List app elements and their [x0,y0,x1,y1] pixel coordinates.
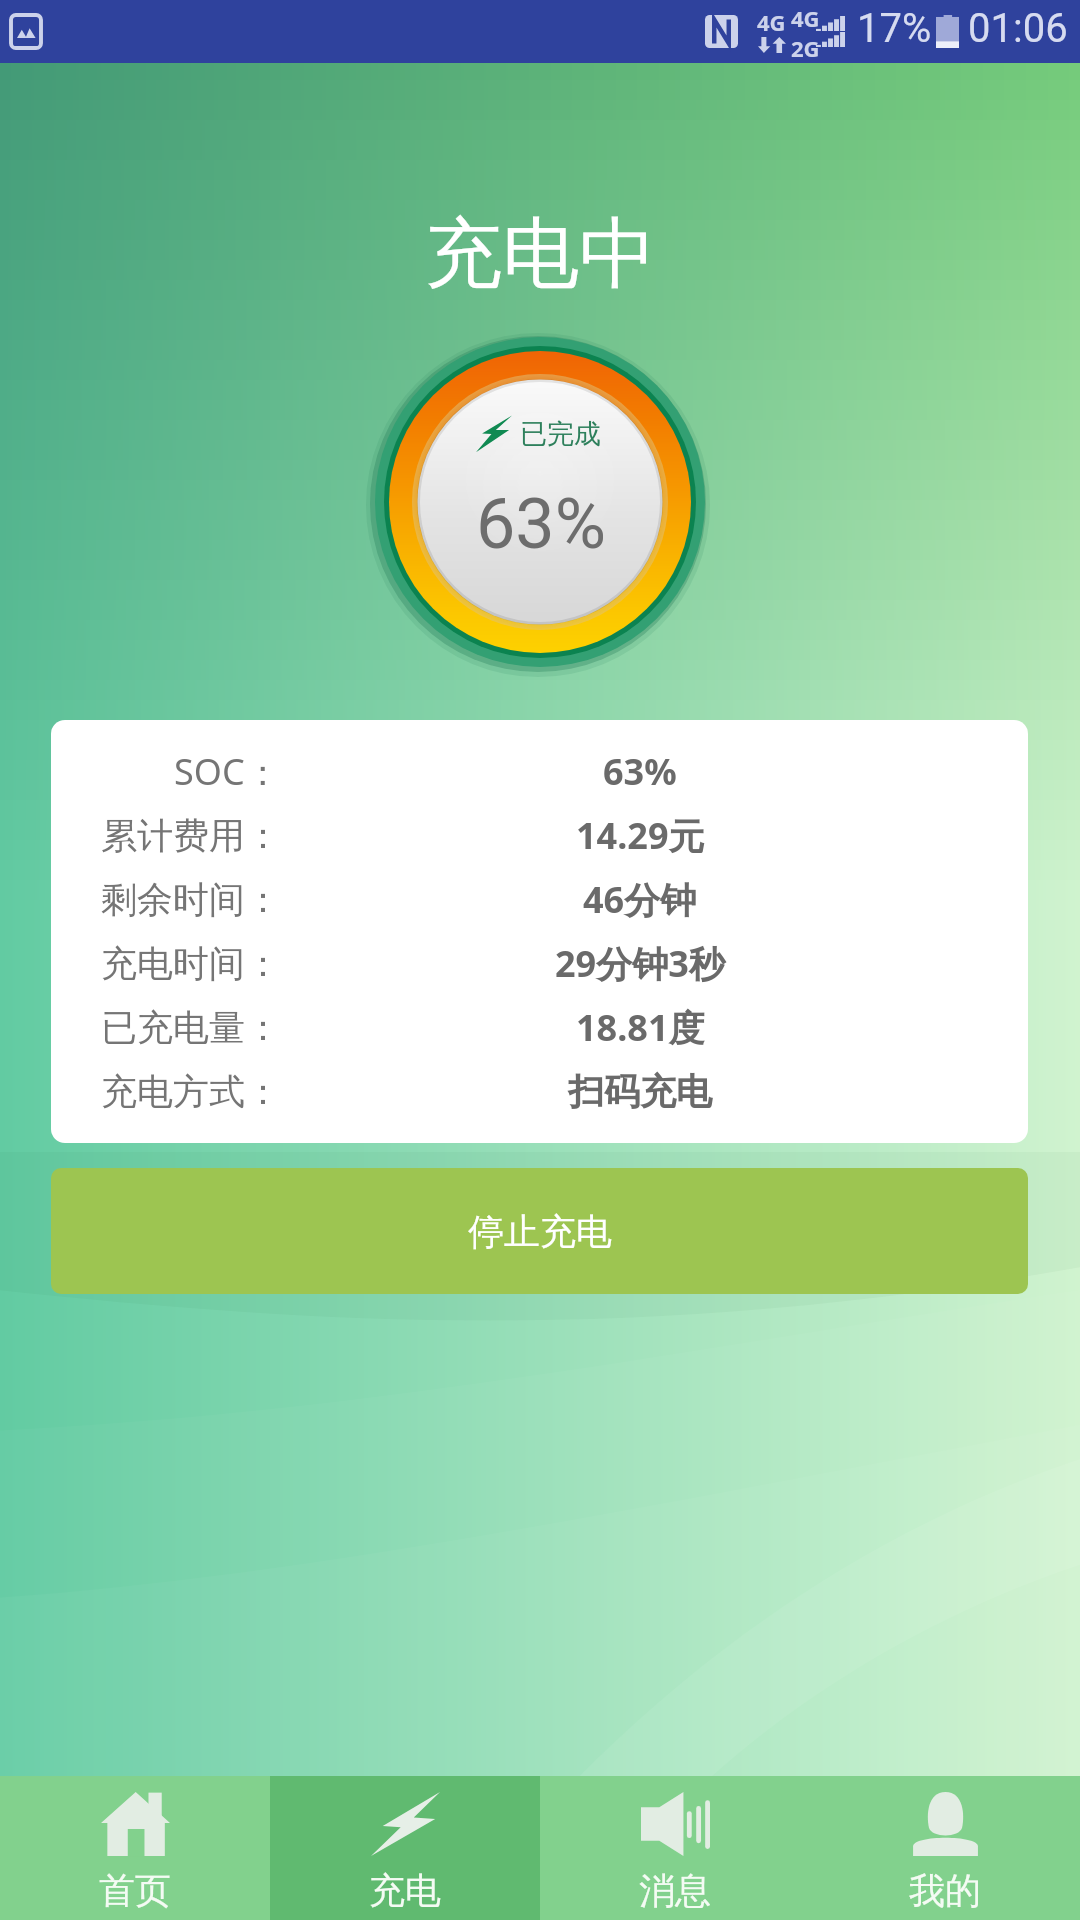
staticText: 已充电量： [101,1005,281,1050]
staticText: 63% [603,747,677,796]
button[interactable]: Profile [810,1776,1080,1920]
staticText: 18.81度 [576,1003,705,1052]
staticText: 消息 [639,1868,711,1913]
staticText: 充电 [369,1868,441,1913]
staticText: 17% [857,5,932,52]
staticText: 我的 [909,1868,981,1913]
staticText: 扫码充电 [568,1069,712,1114]
staticText: 累计费用： [101,813,281,858]
staticText: SOC： [174,747,281,796]
staticText: 首页 [99,1868,171,1913]
staticText: 63% [476,483,606,565]
staticText: 停止充电 [468,1209,612,1254]
button[interactable]: Charging [270,1776,540,1920]
staticText: 29分钟3秒 [555,939,725,988]
button[interactable]: Home [0,1776,270,1920]
staticText: 4G [791,3,820,33]
staticText: 01:06 [968,5,1068,52]
staticText: 充电时间： [101,941,281,986]
staticText: 2G [791,33,820,63]
button[interactable]: 停止充电 [51,1168,1028,1294]
staticText: 4G [757,7,786,37]
staticText: 46分钟 [583,875,697,924]
staticText: 已完成 [520,417,601,451]
staticText: 充电方式： [101,1069,281,1114]
staticText: 充电中 [425,206,656,303]
button[interactable]: Messages [540,1776,810,1920]
staticText: 14.29元 [576,811,705,860]
staticText: 剩余时间： [101,877,281,922]
